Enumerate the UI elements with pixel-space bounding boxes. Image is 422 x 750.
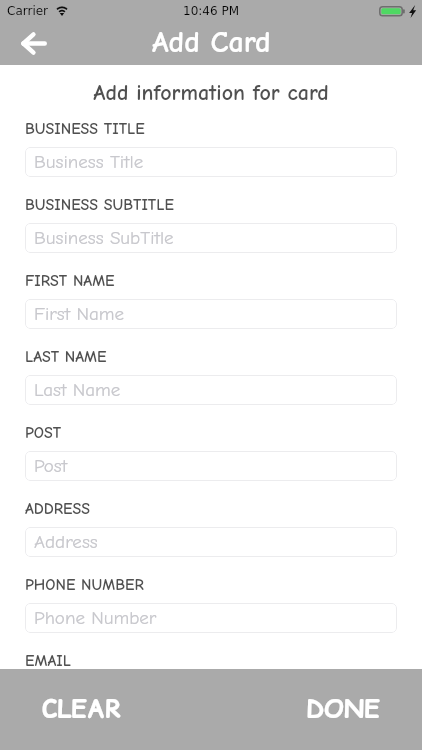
staticText: Email <box>34 687 80 709</box>
staticText: Add Card <box>152 25 271 60</box>
staticText: Carrier <box>7 4 49 18</box>
staticText: Address <box>34 531 98 553</box>
staticText: PHONE NUMBER <box>25 576 144 594</box>
staticText: LAST NAME <box>25 348 107 366</box>
staticText: Post <box>34 455 68 477</box>
button[interactable]: Phone Number <box>25 603 397 633</box>
staticText: POST <box>25 424 62 442</box>
staticText: Phone Number <box>34 607 157 629</box>
button[interactable]: Back <box>0 22 55 65</box>
staticText: Business Title <box>34 151 144 173</box>
staticText: First Name <box>34 303 125 325</box>
staticText: FIRST NAME <box>25 272 115 290</box>
staticText: BUSINESS SUBTITLE <box>25 196 174 214</box>
button[interactable]: Business SubTitle <box>25 223 397 253</box>
staticText: BUSINESS TITLE <box>25 120 145 138</box>
button[interactable]: CLEAR <box>0 669 211 750</box>
button[interactable]: DONE <box>211 669 422 750</box>
button[interactable]: Business Title <box>25 147 397 177</box>
staticText: EMAIL <box>25 652 71 670</box>
staticText: Business SubTitle <box>34 227 174 249</box>
staticText: DONE <box>306 691 380 726</box>
staticText: Add information for card <box>0 80 422 105</box>
button[interactable]: First Name <box>25 299 397 329</box>
staticText: 10:46 PM <box>183 4 239 18</box>
staticText: CLEAR <box>42 691 122 726</box>
button[interactable]: Email <box>25 683 397 713</box>
button[interactable]: Last Name <box>25 375 397 405</box>
button[interactable]: Address <box>25 527 397 557</box>
staticText: Last Name <box>34 379 121 401</box>
button[interactable]: Post <box>25 451 397 481</box>
staticText: ADDRESS <box>25 500 91 518</box>
